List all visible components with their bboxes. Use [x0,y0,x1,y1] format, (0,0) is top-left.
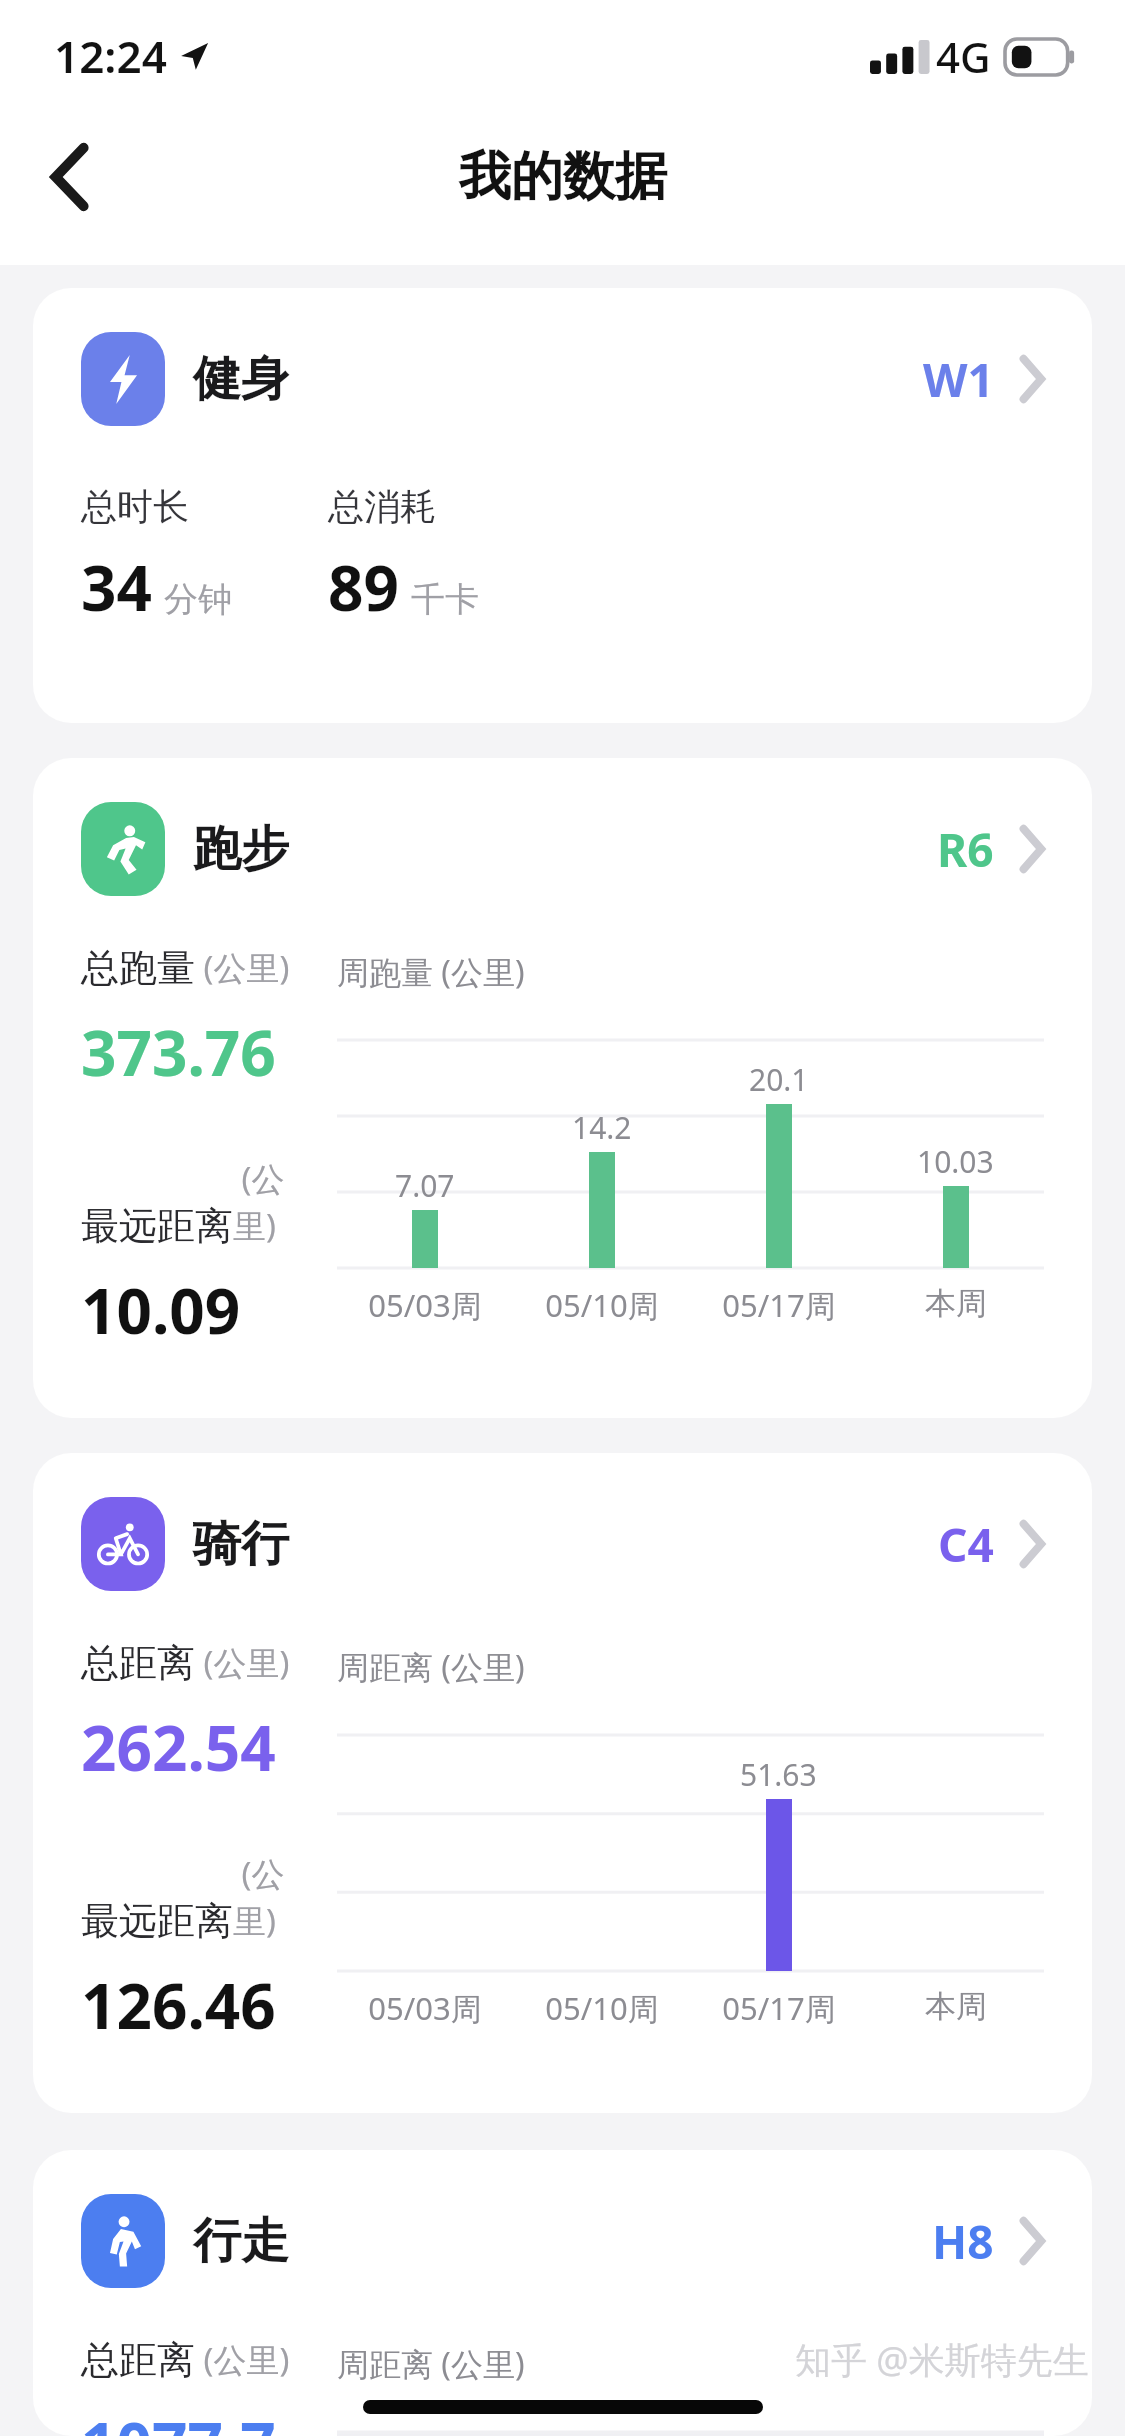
staticText: 12:24 [54,26,167,86]
staticText: 7.07 [395,1165,455,1206]
staticText: 骑行 [193,1514,289,1574]
staticText: 分钟 [164,578,232,621]
staticText: (公里) [195,2337,290,2382]
staticText: C4 [938,1513,994,1576]
button[interactable]: Back [20,127,120,227]
staticText: (公里) [233,1156,301,1248]
button[interactable]: 行走 [33,2150,1092,2436]
staticText: 总距离 [81,1639,195,1687]
staticText: 05/03周 [368,1987,482,2029]
staticText: 我的数据 [459,144,667,210]
staticText: R6 [937,818,994,881]
staticText: H8 [932,2210,994,2273]
staticText: 周距离 (公里) [337,1645,525,1689]
staticText: 126.46 [81,1963,276,2047]
staticText: 51.63 [740,1754,817,1795]
staticText: 10.03 [917,1141,994,1182]
staticText: 总消耗 [328,484,436,529]
staticText: 4G [936,28,991,85]
button[interactable]: 骑行 [33,1453,1092,2113]
staticText: 千卡 [411,578,479,621]
staticText: 20.1 [749,1059,809,1100]
staticText: 373.76 [81,1010,276,1094]
staticText: 本周 [925,1987,987,2026]
staticText: 最远距离 [81,1202,233,1250]
button[interactable]: 跑步 [33,758,1092,1418]
staticText: 行走 [193,2211,289,2271]
staticText: 14.2 [572,1107,632,1148]
staticText: 05/10周 [545,1987,659,2029]
staticText: (公里) [195,1640,290,1685]
button[interactable]: 健身 [33,288,1092,723]
staticText: 总跑量 [81,944,195,992]
button[interactable]: 健身 [81,332,1044,426]
staticText: 89 [328,545,399,629]
staticText: (公里) [195,945,290,990]
staticText: 05/17周 [722,1284,836,1326]
staticText: 本周 [925,1284,987,1323]
staticText: 1077.71 [81,2402,301,2436]
button[interactable]: 跑步 [81,802,1044,896]
staticText: 总距离 [81,2336,195,2384]
staticText: 跑步 [193,819,289,879]
staticText: 05/03周 [368,1284,482,1326]
staticText: 总时长 [81,484,189,529]
staticText: (公里) [233,1851,301,1943]
staticText: W1 [923,348,994,411]
staticText: 周跑量 (公里) [337,950,525,994]
staticText: 最远距离 [81,1897,233,1945]
button[interactable]: 骑行 [81,1497,1044,1591]
staticText: 05/17周 [722,1987,836,2029]
staticText: 05/10周 [545,1284,659,1326]
staticText: 健身 [193,349,289,409]
staticText: 34 [81,545,152,629]
staticText: 262.54 [81,1705,276,1789]
staticText: 知乎 @米斯特先生 [795,2335,1089,2384]
staticText: 10.09 [81,1268,241,1352]
staticText: 周距离 (公里) [337,2342,525,2386]
button[interactable]: 行走 [81,2194,1044,2288]
